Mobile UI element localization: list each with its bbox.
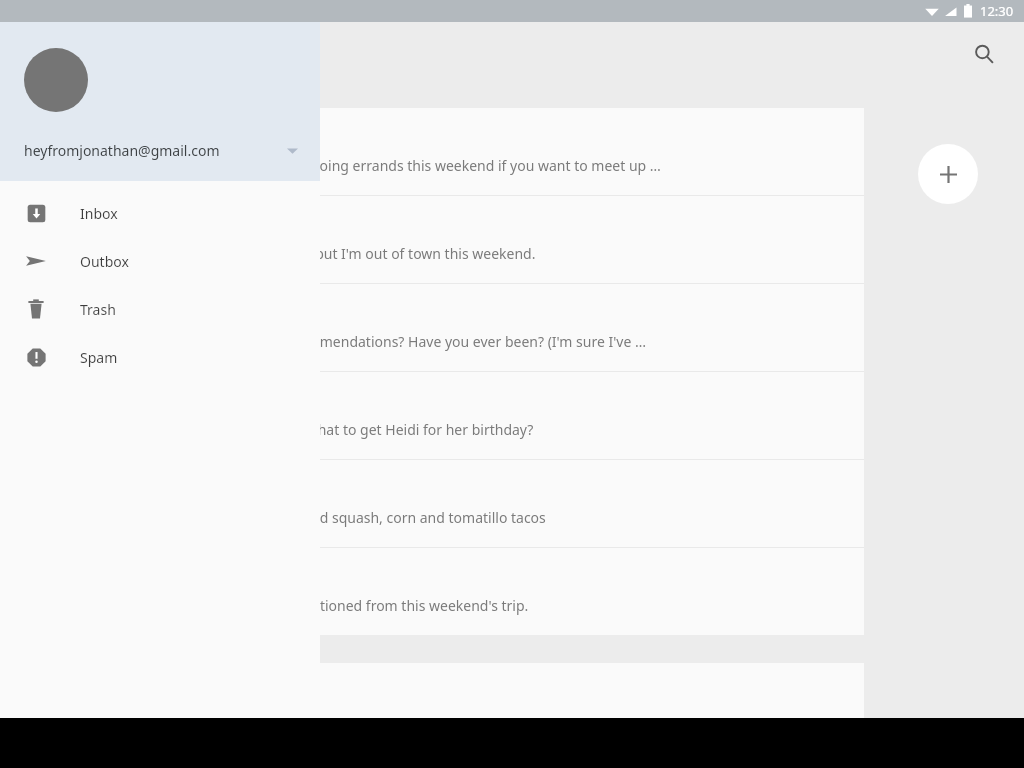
staticText: Trevor Hanson — Here are the shots I men…: [40, 596, 529, 615]
staticText: Outbox: [80, 252, 129, 271]
staticText: heyfromjonathan@gmail.com: [24, 141, 220, 160]
staticText: Saturday BBQ: [40, 217, 143, 237]
button[interactable]: Are you free this weekend?: [16, 108, 864, 195]
staticText: Britta Holt, Ben — Have any ideas about …: [40, 420, 534, 439]
button[interactable]: heyfromjonathan@gmail.com: [0, 22, 320, 181]
button[interactable]: Outbox: [0, 237, 320, 285]
button[interactable]: Inbox: [0, 189, 320, 237]
staticText: Are you free this weekend?: [40, 129, 243, 149]
button[interactable]: Compose: [918, 144, 978, 204]
staticText: Trash: [80, 300, 116, 319]
button[interactable]: Photos from the weekend: [16, 548, 864, 635]
button[interactable]: Recipe to try: [16, 460, 864, 547]
staticText: Paris trip: [40, 305, 109, 325]
button[interactable]: Search: [960, 30, 1008, 78]
staticText: Trevor Hansen — Do you have Paris recomm…: [40, 332, 647, 351]
button[interactable]: Birthday gift: [16, 372, 864, 459]
staticText: Inbox: [80, 204, 118, 223]
staticText: Ali, Robert, Jennifer — Wish I could com…: [40, 244, 536, 263]
button[interactable]: Trash: [0, 285, 320, 333]
staticText: Spam: [80, 348, 118, 367]
staticText: Heidi Kim — I'll be in your neighborhood…: [40, 156, 661, 175]
button[interactable]: Saturday BBQ: [16, 196, 864, 283]
staticText: Sandra Adams — We should eat this: grate…: [40, 508, 546, 527]
staticText: 12:30: [980, 2, 1014, 20]
button[interactable]: Spam: [0, 333, 320, 381]
button[interactable]: Paris trip: [16, 284, 864, 371]
